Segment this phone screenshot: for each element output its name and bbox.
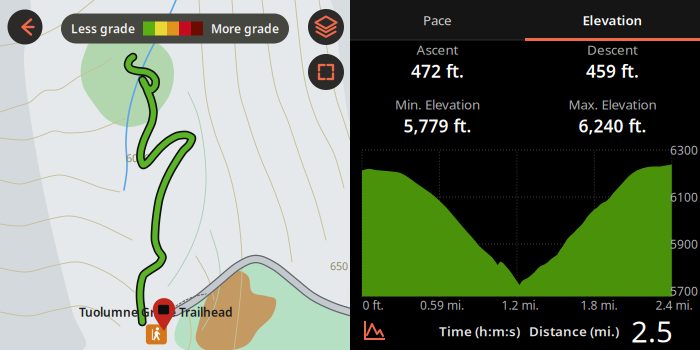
staticText: Pace [423, 11, 452, 29]
staticText: 650 [330, 259, 348, 273]
staticText: Less grade [71, 20, 135, 36]
staticText: Ascent [416, 41, 458, 58]
staticText: 6000 [126, 151, 150, 165]
staticText: 5,779 ft. [403, 114, 471, 137]
staticText: 5700 [670, 283, 698, 299]
staticText: 1.2 mi. [501, 297, 538, 313]
staticText: Min. Elevation [395, 95, 480, 113]
staticText: 6300 [670, 142, 698, 158]
staticText: 2.4 mi. [655, 297, 692, 313]
staticText: 472 ft. [411, 59, 464, 82]
staticText: Max. Elevation [568, 95, 656, 113]
staticText: Elevation [582, 11, 642, 29]
button[interactable]: Map layers [308, 9, 344, 45]
staticText: 459 ft. [586, 59, 639, 82]
staticText: 6,240 ft. [578, 114, 646, 137]
staticText: Time (h:m:s) [439, 322, 520, 340]
button[interactable]: Elevation [525, 0, 700, 40]
staticText: Descent [587, 41, 638, 58]
staticText: Distance (mi.) [529, 322, 619, 340]
button[interactable]: Chart type [362, 320, 388, 342]
staticText: 0.59 mi. [420, 297, 464, 313]
button[interactable]: Back [7, 9, 42, 44]
staticText: 6100 [670, 189, 698, 205]
staticText: Tuolumne Grove Trailhead [79, 304, 233, 320]
staticText: 5900 [670, 236, 698, 252]
staticText: 0 ft. [362, 297, 383, 313]
button[interactable]: Pace [350, 0, 525, 40]
staticText: More grade [211, 20, 279, 36]
staticText: 2.5 [631, 311, 673, 350]
staticText: 1.8 mi. [580, 297, 617, 313]
button[interactable]: Full screen [308, 54, 344, 90]
